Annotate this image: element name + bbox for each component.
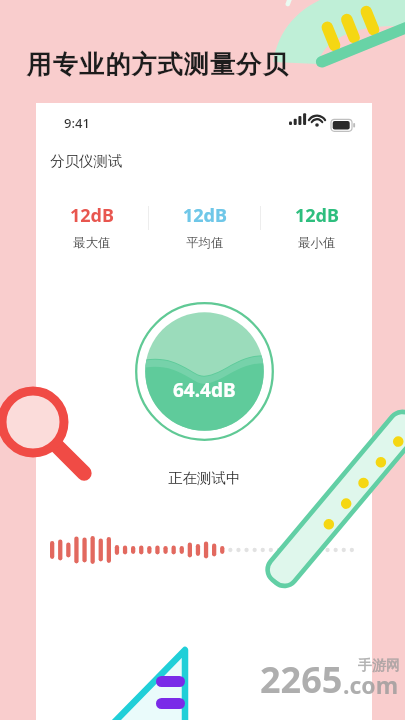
staticText: 2265 — [260, 655, 343, 704]
staticText: 12dB — [70, 203, 114, 228]
staticText: 64.4dB — [173, 377, 236, 403]
button[interactable]: Current decibel level 64.4 dB — [135, 302, 274, 441]
button[interactable]: 12dB — [36, 203, 148, 251]
button[interactable]: 12dB — [261, 203, 372, 251]
staticText: 最大值 — [73, 235, 111, 251]
staticText: 9:41 — [64, 114, 90, 132]
staticText: .com — [343, 669, 399, 700]
staticText: 12dB — [183, 203, 227, 228]
staticText: 用专业的方式测量分贝 — [26, 49, 288, 80]
staticText: 平均值 — [186, 235, 224, 251]
staticText: 正在测试中 — [168, 469, 241, 487]
staticText: 手游网 — [358, 657, 400, 675]
button[interactable]: 12dB — [149, 203, 260, 251]
staticText: 最小值 — [298, 235, 336, 251]
staticText: 分贝仪测试 — [50, 152, 123, 170]
staticText: 12dB — [295, 203, 339, 228]
